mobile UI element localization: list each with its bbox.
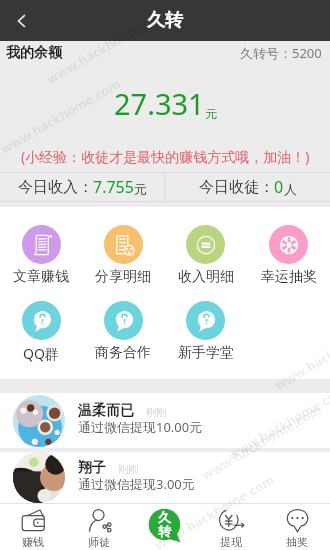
staticText: 人 (284, 181, 297, 197)
staticText: 赚钱 (22, 535, 44, 549)
staticText: 7.755 (93, 176, 134, 198)
staticText: 温柔而已 (78, 402, 134, 420)
staticText: 久转 (147, 9, 183, 32)
staticText: 通过微信提现10.00元 (78, 418, 203, 436)
button[interactable]: 翔子 (0, 452, 330, 503)
button[interactable]: 文章赚钱 (0, 225, 82, 286)
button[interactable]: 赚钱 (0, 503, 66, 550)
staticText: 通过微信提现3.00元 (78, 475, 195, 493)
staticText: 幸运抽奖 (261, 268, 317, 286)
staticText: 刚刚 (118, 463, 138, 476)
button[interactable]: 分享明细 (82, 225, 164, 286)
button[interactable]: Back (4, 3, 40, 39)
staticText: www.hackhome.com (271, 310, 330, 394)
staticText: 师徒 (88, 535, 110, 549)
staticText: 元 (205, 106, 217, 121)
button[interactable]: 今日收入： (0, 173, 164, 201)
staticText: www.hackhome.com (224, 380, 330, 464)
button[interactable]: 久转 (132, 503, 198, 550)
staticText: 文章赚钱 (13, 268, 69, 286)
button[interactable]: 抽奖 (264, 503, 330, 550)
button[interactable]: 幸运抽奖 (247, 225, 330, 286)
staticText: 收入明细 (178, 268, 234, 286)
staticText: 分享明细 (95, 268, 151, 286)
staticText: 翔子 (78, 459, 106, 477)
staticText: 元 (134, 181, 147, 197)
staticText: www.hackhome.com (198, 400, 325, 484)
staticText: 27.331 (114, 84, 205, 123)
staticText: 刚刚 (146, 406, 166, 419)
button[interactable]: 温柔而已 (0, 393, 330, 448)
button[interactable]: 今日收徒： (165, 173, 330, 201)
staticText: www.hackhome.com (0, 74, 124, 158)
staticText: 0 (274, 176, 284, 198)
staticText: 今日收徒： (199, 178, 274, 197)
staticText: 今日收入： (18, 178, 93, 197)
staticText: 久转号：5200 (240, 44, 322, 62)
button[interactable]: 师徒 (66, 503, 132, 550)
staticText: 久 (158, 509, 171, 525)
staticText: 商务合作 (95, 344, 151, 362)
staticText: QQ群 (23, 344, 59, 363)
staticText: (小经验：收徒才是最快的赚钱方式哦，加油！) (21, 147, 310, 166)
button[interactable]: 商务合作 (82, 301, 164, 362)
staticText: www.hackhome.com (43, 4, 170, 88)
button[interactable]: 新手学堂 (164, 301, 247, 362)
staticText: 新手学堂 (178, 344, 234, 362)
button[interactable]: 提现 (198, 503, 264, 550)
staticText: 转 (158, 523, 171, 539)
staticText: www.hackhome.com (151, 470, 278, 550)
staticText: 提现 (220, 535, 242, 549)
button[interactable]: 收入明细 (164, 225, 247, 286)
staticText: 抽奖 (286, 535, 308, 549)
staticText: 我的余额 (6, 44, 62, 62)
button[interactable]: QQ群 (0, 301, 82, 363)
